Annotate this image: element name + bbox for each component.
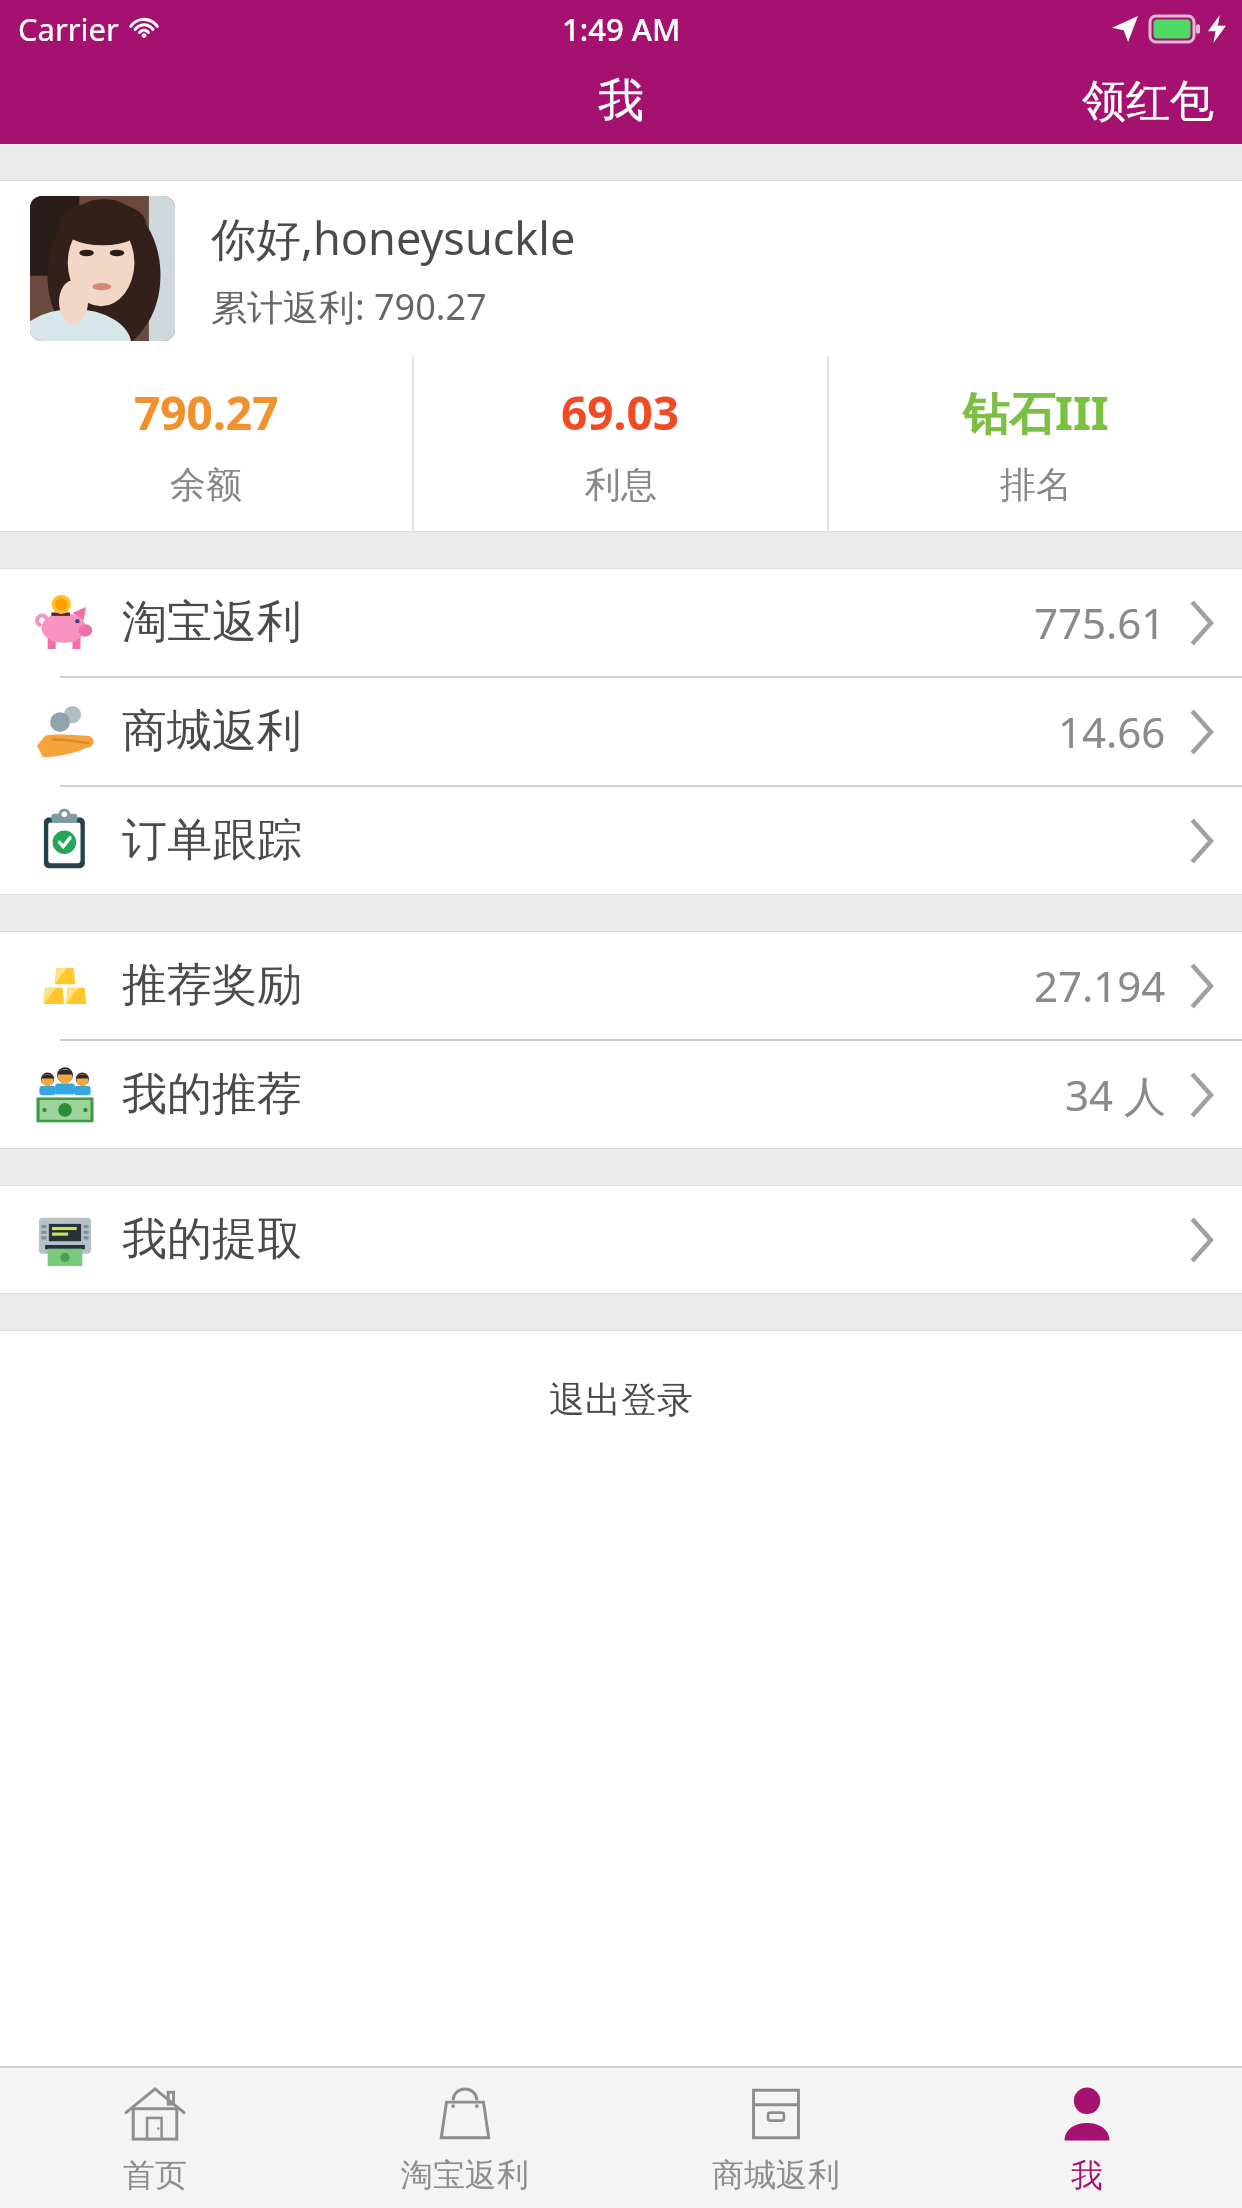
button[interactable]: 我的推荐: [0, 1041, 1242, 1148]
button[interactable]: 领红包: [1054, 60, 1242, 143]
staticText: 商城返利: [122, 703, 302, 760]
button[interactable]: 淘宝返利: [0, 569, 1242, 676]
button[interactable]: 订单跟踪: [0, 787, 1242, 894]
button[interactable]: 69.03: [414, 356, 827, 531]
staticText: 我的推荐: [122, 1066, 302, 1123]
button[interactable]: 推荐奖励: [0, 932, 1242, 1039]
staticText: 淘宝返利: [122, 594, 302, 651]
button[interactable]: 我: [931, 2068, 1242, 2208]
staticText: 你好,honeysuckle: [211, 207, 576, 268]
button[interactable]: 退出登录: [0, 1331, 1242, 2066]
other: 首页: [122, 2081, 188, 2147]
staticText: Carrier: [18, 8, 119, 50]
button[interactable]: 你好,honeysuckle: [0, 181, 1242, 356]
staticText: 退出登录: [549, 1377, 693, 1422]
staticText: 商城返利: [712, 2155, 840, 2195]
button[interactable]: 商城返利: [0, 678, 1242, 785]
staticText: 利息: [585, 462, 657, 507]
button[interactable]: 钻石III: [829, 356, 1242, 531]
staticText: 69.03: [561, 381, 680, 444]
staticText: 领红包: [1082, 74, 1214, 129]
staticText: 余额: [170, 462, 242, 507]
staticText: 排名: [1000, 462, 1072, 507]
button[interactable]: 商城返利: [620, 2068, 931, 2208]
staticText: 27.194: [1034, 957, 1166, 1014]
staticText: 我: [1071, 2155, 1103, 2195]
staticText: 推荐奖励: [122, 957, 302, 1014]
staticText: 我: [598, 72, 644, 130]
button[interactable]: 淘宝返利: [310, 2068, 620, 2208]
staticText: 34 人: [1065, 1066, 1166, 1123]
other: 我: [1054, 2081, 1120, 2147]
button[interactable]: 首页: [0, 2068, 310, 2208]
staticText: 累计返利: 790.27: [211, 282, 487, 331]
button[interactable]: 我的提取: [0, 1186, 1242, 1293]
other: 商城返利: [743, 2081, 809, 2147]
staticText: 1:49 AM: [562, 8, 681, 50]
staticText: 钻石III: [963, 381, 1109, 444]
staticText: 775.61: [1034, 594, 1166, 651]
other: 淘宝返利: [432, 2081, 498, 2147]
staticText: 订单跟踪: [122, 812, 302, 869]
staticText: 14.66: [1058, 703, 1166, 760]
button[interactable]: 790.27: [0, 356, 412, 531]
staticText: 790.27: [134, 381, 279, 444]
staticText: 首页: [123, 2155, 187, 2195]
staticText: 我的提取: [122, 1211, 302, 1268]
staticText: 淘宝返利: [401, 2155, 529, 2195]
